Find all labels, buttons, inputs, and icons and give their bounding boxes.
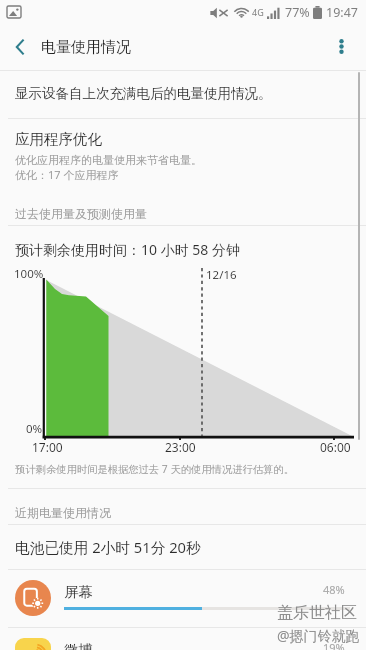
staticText: 过去使用量及预测使用量 [15,206,147,221]
staticText: 48% [323,582,345,597]
staticText: 显示设备自上次充满电后的电量使用情况。 [15,85,272,102]
staticText: 19:47 [326,4,358,21]
button[interactable]: 电池已使用 2小时 51分 20秒 [0,525,366,569]
staticText: 77% [285,4,310,21]
staticText: @摁门铃就跑 [277,626,360,645]
staticText: 微博 [64,641,93,650]
button[interactable]: 应用程序优化 [0,119,366,185]
staticText: 17:00 [32,439,63,455]
staticText: 屏幕 [64,583,93,601]
staticText: 近期电量使用情况 [15,505,111,520]
staticText: 优化应用程序的电量使用来节省电量。 [15,153,202,167]
button[interactable]: Back [0,24,42,70]
staticText: 19% [323,640,345,650]
button[interactable]: 屏幕 [0,570,366,627]
staticText: 电池已使用 2小时 51分 20秒 [15,537,201,557]
staticText: 4G [252,6,264,18]
staticText: 电量使用情况 [41,38,131,57]
staticText: 应用程序优化 [15,130,102,148]
staticText: 06:00 [320,439,351,455]
button[interactable]: More options [322,24,366,70]
staticText: 23:00 [165,439,196,455]
staticText: 盖乐世社区 [277,603,357,623]
staticText: 12/16 [206,267,237,283]
staticText: 优化：17 个应用程序 [15,167,119,182]
button[interactable]: 微博 [0,628,366,650]
staticText: 预计剩余使用时间：10 小时 58 分钟 [15,240,240,259]
staticText: 0% [26,421,43,437]
staticText: 100% [14,266,44,282]
staticText: 预计剩余使用时间是根据您过去 7 天的使用情况进行估算的。 [15,462,294,476]
